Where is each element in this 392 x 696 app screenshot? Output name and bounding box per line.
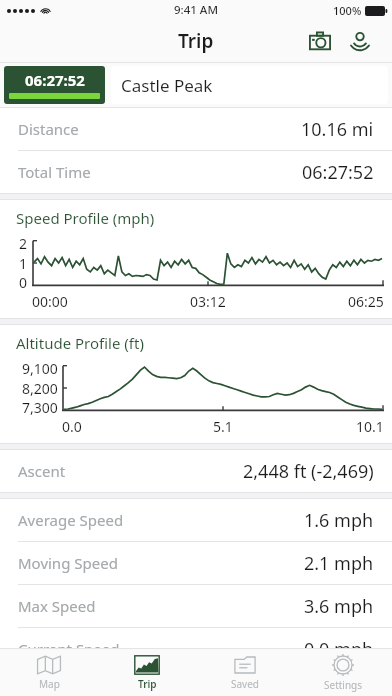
staticText: 1.6 mph xyxy=(304,508,374,533)
staticText: 2 xyxy=(19,234,28,253)
button[interactable]: Trip xyxy=(98,649,196,696)
button[interactable]: Total Time xyxy=(0,151,392,193)
staticText: 10.1 xyxy=(356,417,384,436)
button[interactable]: Max Speed xyxy=(0,585,392,627)
staticText: 0.0 mph xyxy=(304,637,374,662)
staticText: Max Speed xyxy=(18,596,96,616)
staticText: 0 xyxy=(19,273,28,292)
button[interactable]: Average Speed xyxy=(0,499,392,541)
staticText: 8,200 xyxy=(22,379,58,398)
button[interactable]: Settings xyxy=(294,649,392,696)
staticText: Speed Profile (mph) xyxy=(16,208,155,228)
staticText: Altitude Profile (ft) xyxy=(16,333,144,353)
staticText: 06:27:52 xyxy=(25,70,85,90)
staticText: Total Time xyxy=(18,162,91,182)
staticText: Average Speed xyxy=(18,510,124,530)
button[interactable]: Current location xyxy=(340,21,380,61)
staticText: Settings xyxy=(324,678,363,692)
staticText: Ascent xyxy=(18,461,66,481)
button[interactable]: Current Speed xyxy=(0,628,392,670)
button[interactable]: Ascent xyxy=(0,450,392,492)
staticText: 06:27:52 xyxy=(302,160,374,185)
staticText: 00:00 xyxy=(32,292,68,311)
staticText: 3.6 mph xyxy=(304,594,374,619)
staticText: 9,100 xyxy=(22,359,58,378)
staticText: 9:41 AM xyxy=(174,2,218,18)
button[interactable]: Take photo xyxy=(300,21,340,61)
staticText: Trip xyxy=(178,28,214,54)
staticText: Saved xyxy=(231,677,259,691)
button[interactable]: Distance xyxy=(0,108,392,150)
staticText: 7,300 xyxy=(22,398,58,417)
button[interactable]: Moving Speed xyxy=(0,542,392,584)
button[interactable]: Saved xyxy=(196,649,294,696)
staticText: Castle Peak xyxy=(121,74,213,97)
staticText: 100% xyxy=(333,3,362,18)
staticText: Map xyxy=(39,677,60,691)
staticText: 03:12 xyxy=(190,292,226,311)
button[interactable]: 06:27:52 xyxy=(4,66,105,104)
staticText: 2,448 ft (-2,469) xyxy=(243,459,374,484)
staticText: 10.16 mi xyxy=(301,117,374,142)
button[interactable]: Castle Peak xyxy=(111,66,388,104)
staticText: Current Speed xyxy=(18,639,120,659)
staticText: 06:25 xyxy=(348,292,384,311)
staticText: Moving Speed xyxy=(18,553,118,573)
staticText: 1 xyxy=(19,254,28,273)
button[interactable]: Map xyxy=(0,649,98,696)
staticText: 2.1 mph xyxy=(304,551,374,576)
staticText: Distance xyxy=(18,119,79,139)
staticText: Trip xyxy=(138,677,157,691)
staticText: 0.0 xyxy=(62,417,82,436)
staticText: 5.1 xyxy=(213,417,233,436)
